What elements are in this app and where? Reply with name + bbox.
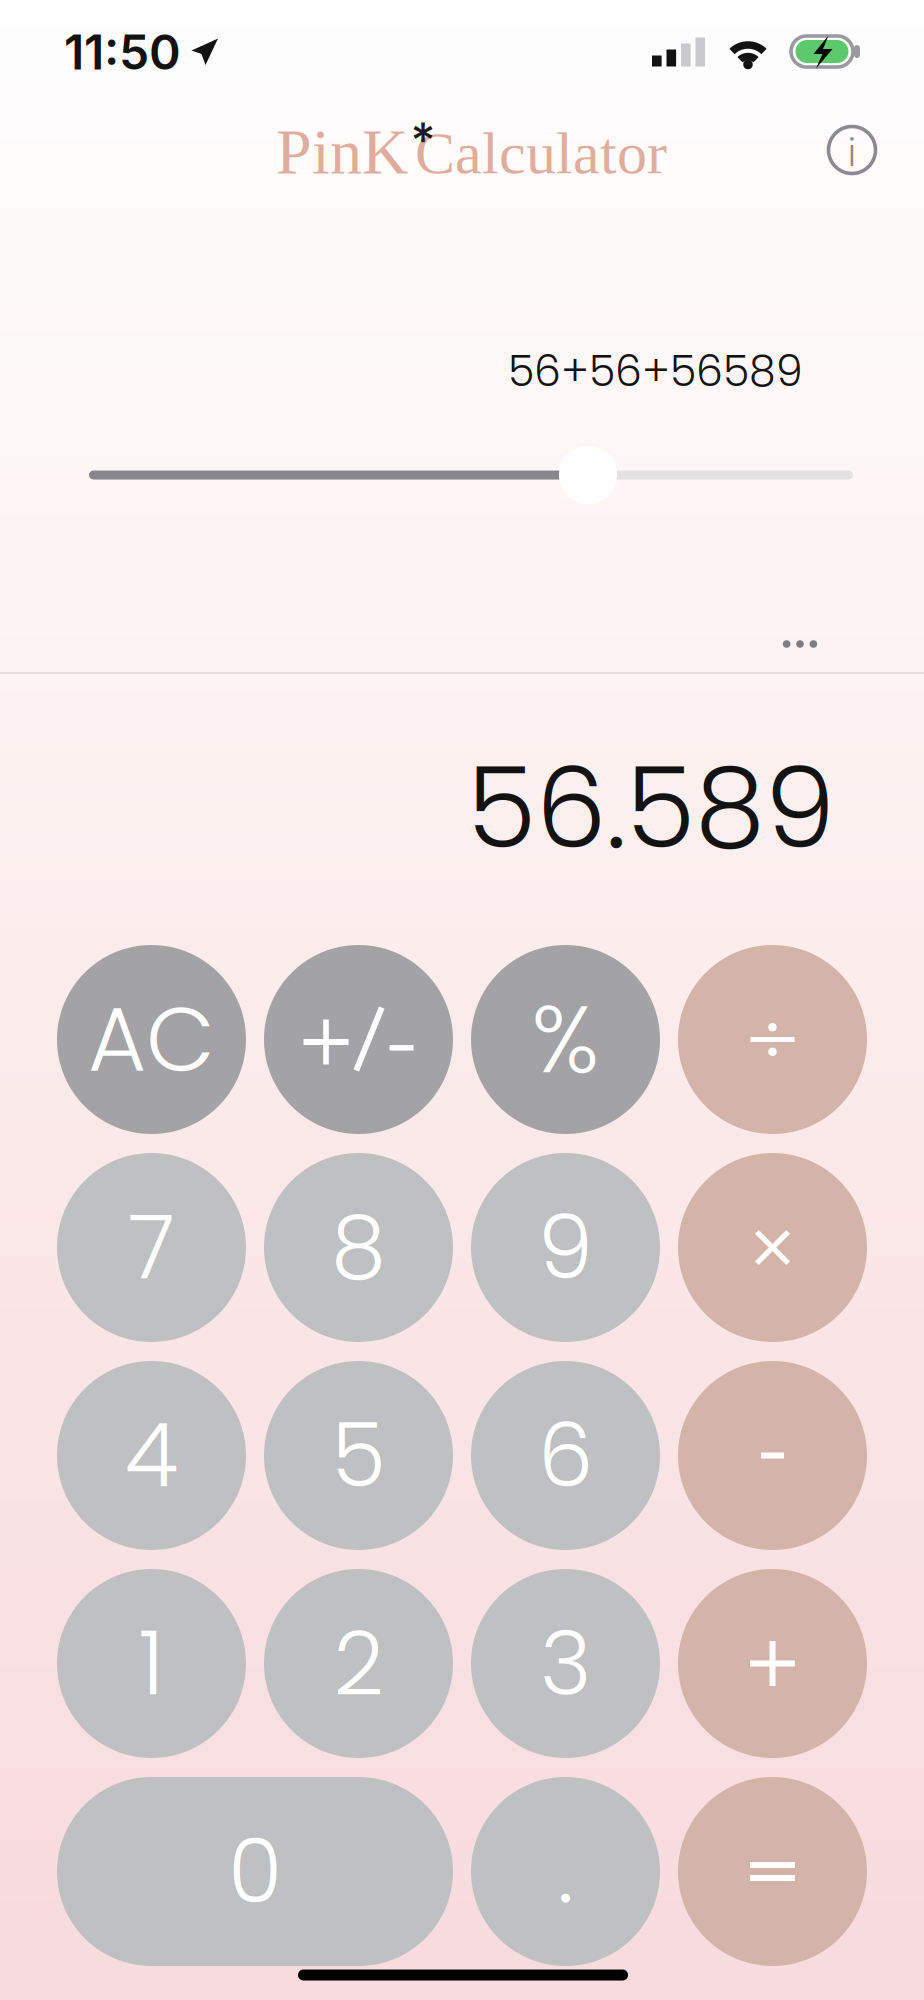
button[interactable]: 4 <box>57 1361 246 1550</box>
staticText: PinK <box>276 117 408 187</box>
staticText: Calculator <box>415 120 667 186</box>
button[interactable]: 3 <box>471 1569 660 1758</box>
button[interactable]: % <box>471 945 660 1134</box>
button[interactable]: 5 <box>264 1361 453 1550</box>
button[interactable]: 6 <box>471 1361 660 1550</box>
button[interactable]: Plus <box>678 1569 867 1758</box>
button[interactable]: 2 <box>264 1569 453 1758</box>
staticText: 1 <box>138 1602 164 1725</box>
staticText: 8 <box>331 1186 386 1309</box>
button[interactable]: Minus <box>678 1361 867 1550</box>
button[interactable]: Multiply <box>678 1153 867 1342</box>
staticText: 3 <box>540 1602 591 1725</box>
staticText: AC <box>88 977 215 1102</box>
button[interactable]: Divide <box>678 945 867 1134</box>
button[interactable]: More <box>758 617 842 671</box>
button[interactable]: AC <box>57 945 246 1134</box>
staticText: * <box>410 111 435 169</box>
staticText: 56+56+56589 <box>508 341 803 401</box>
staticText: . <box>557 1810 573 1933</box>
button[interactable]: 0 <box>57 1777 453 1966</box>
button[interactable]: Plus or minus <box>264 945 453 1134</box>
button[interactable]: Equals <box>678 1777 867 1966</box>
staticText: 9 <box>538 1186 593 1309</box>
button[interactable]: Info <box>816 114 888 186</box>
staticText: % <box>531 974 599 1105</box>
staticText: 0 <box>228 1810 282 1933</box>
button[interactable]: 1 <box>57 1569 246 1758</box>
staticText: 5 <box>331 1394 385 1517</box>
staticText: 7 <box>128 1186 175 1309</box>
button[interactable]: History <box>89 440 853 510</box>
button[interactable]: 7 <box>57 1153 246 1342</box>
staticText: i <box>848 127 856 176</box>
button[interactable]: PinK <box>277 120 697 184</box>
staticText: 56.589 <box>467 730 835 886</box>
staticText: 4 <box>124 1394 178 1517</box>
staticText: 6 <box>538 1394 593 1517</box>
button[interactable]: 9 <box>471 1153 660 1342</box>
staticText: 11:50 <box>64 23 181 81</box>
button[interactable]: 8 <box>264 1153 453 1342</box>
button[interactable]: . <box>471 1777 660 1966</box>
staticText: 2 <box>333 1602 383 1725</box>
